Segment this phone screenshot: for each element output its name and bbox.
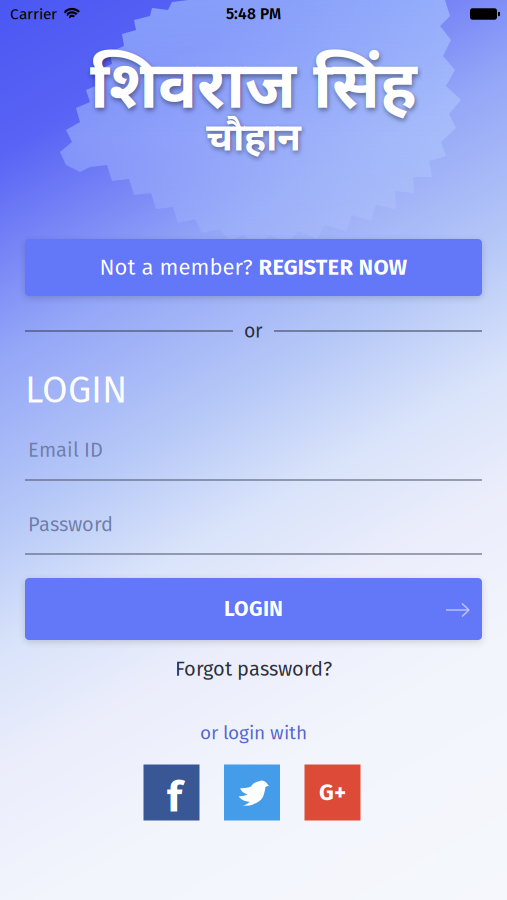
button[interactable]: LOGIN	[25, 578, 482, 640]
staticText: or login with	[200, 722, 307, 744]
staticText: LOGIN	[224, 596, 283, 622]
button[interactable]: Not a member? REGISTER NOW	[25, 239, 482, 296]
staticText: Carrier	[10, 5, 57, 23]
staticText: f	[167, 772, 182, 823]
button[interactable]: Log in with Facebook	[143, 764, 199, 820]
button[interactable]: Log in with Google	[304, 764, 360, 820]
staticText: Not a member? REGISTER NOW	[99, 255, 407, 280]
button[interactable]: Log in with Twitter	[224, 764, 280, 820]
staticText: Forgot password?	[175, 657, 332, 681]
staticText: LOGIN	[25, 368, 127, 412]
button[interactable]: Forgot password?	[175, 657, 332, 681]
staticText: or	[244, 319, 263, 343]
staticText: चौहान	[206, 116, 301, 166]
button[interactable]: Email ID	[25, 436, 482, 480]
staticText: G+	[319, 779, 346, 806]
staticText: Password	[28, 512, 113, 536]
staticText: Email ID	[28, 438, 103, 462]
button[interactable]: Password	[25, 510, 482, 554]
staticText: 5:48 PM	[226, 5, 281, 23]
staticText: शिवराज सिंह	[90, 50, 417, 134]
